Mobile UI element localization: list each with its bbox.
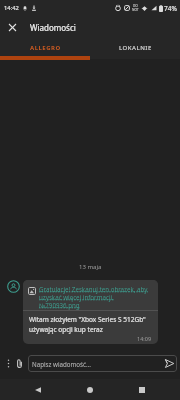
button[interactable]: Attach file	[14, 358, 25, 369]
staticText: uzyskać więcej informacji.	[39, 293, 114, 301]
staticText: 14:42	[4, 4, 19, 12]
staticText: NOT	[132, 8, 139, 12]
staticText: 74%	[164, 4, 177, 13]
button[interactable]: Back	[29, 381, 47, 399]
button[interactable]: Close	[0, 16, 24, 38]
button[interactable]: LOKALNIE	[90, 38, 180, 60]
button[interactable]: Gratulacje! Zeskanuj ten obrazek, aby	[28, 285, 154, 309]
button[interactable]: Home	[81, 381, 99, 399]
staticText: Napisz wiadomość...	[32, 360, 91, 368]
staticText: ALLEGRO	[30, 44, 61, 52]
button[interactable]: Send	[162, 356, 177, 371]
button[interactable]: Napisz wiadomość...	[28, 355, 177, 372]
staticText: DO	[133, 4, 138, 8]
staticText: Gratulacje! Zeskanuj ten obrazek, aby	[39, 285, 148, 293]
staticText: LOKALNIE	[119, 44, 152, 52]
button[interactable]: Recent apps	[133, 381, 151, 399]
staticText: 14:09	[137, 335, 152, 342]
staticText: Witam złożyłem "Xbox Series S 512Gb" uży…	[29, 315, 152, 334]
button[interactable]: More options	[3, 358, 14, 369]
staticText: №790936.png	[39, 301, 80, 309]
staticText: Wiadomości	[30, 22, 76, 33]
staticText: 13 maja	[79, 263, 102, 271]
button[interactable]: ALLEGRO	[0, 38, 90, 60]
